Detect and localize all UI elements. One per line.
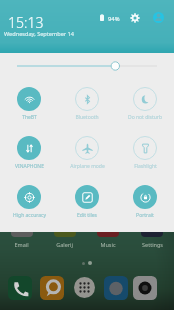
staticText: Airplane mode <box>70 163 105 170</box>
staticText: Galerij <box>56 241 73 248</box>
button[interactable]: VINAPHONE <box>0 136 58 170</box>
button[interactable]: Email <box>0 224 43 248</box>
staticText: Bluetooth <box>75 114 99 121</box>
button[interactable]: Music <box>86 224 130 248</box>
button[interactable]: Bluetooth <box>58 87 116 121</box>
button[interactable]: Edit tiles <box>58 185 116 219</box>
button[interactable]: Browser <box>103 275 128 300</box>
button[interactable]: User account <box>152 11 165 24</box>
staticText: Portrait <box>136 212 154 219</box>
staticText: Email <box>14 241 29 248</box>
button[interactable]: Phone <box>7 275 32 300</box>
staticText: Do not disturb <box>128 114 162 121</box>
staticText: Flashlight <box>134 163 157 170</box>
staticText: High accuracy <box>13 212 46 219</box>
button[interactable]: Messages <box>39 275 64 300</box>
button[interactable]: Settings <box>130 224 174 248</box>
staticText: Edit tiles <box>77 212 97 219</box>
button[interactable]: Flashlight <box>116 136 174 170</box>
staticText: 94% <box>108 15 120 23</box>
button[interactable]: Do not disturb <box>116 87 174 121</box>
button[interactable]: Camera <box>132 275 157 300</box>
staticText: Music <box>100 241 116 248</box>
button[interactable]: High accuracy <box>0 185 58 219</box>
button[interactable]: Galerij <box>43 224 86 248</box>
button[interactable]: Brightness <box>0 58 174 74</box>
button[interactable]: Airplane mode <box>58 136 116 170</box>
button[interactable]: Apps <box>72 275 97 300</box>
button[interactable]: Settings <box>128 11 141 24</box>
staticText: 15:13 <box>8 13 44 32</box>
staticText: VINAPHONE <box>15 163 44 170</box>
staticText: Settings <box>142 241 163 248</box>
button[interactable]: Portrait <box>116 185 174 219</box>
staticText: Wednesday, September 14 <box>4 30 74 38</box>
button[interactable]: TheBT <box>0 87 58 121</box>
staticText: TheBT <box>22 114 37 121</box>
